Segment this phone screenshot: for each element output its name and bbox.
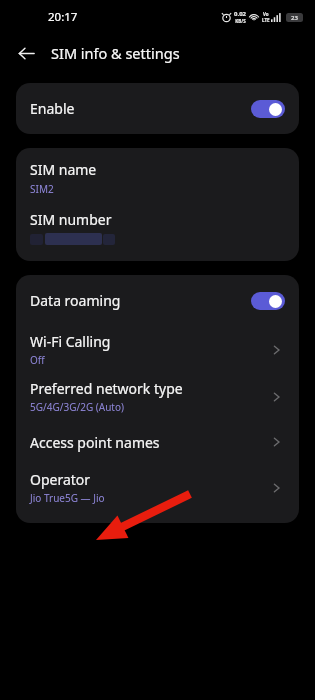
staticText: Jio True5G — Jio (30, 491, 105, 505)
staticText: Off (30, 353, 45, 367)
staticText: SIM number (30, 210, 112, 229)
button[interactable]: Toggle on (251, 100, 285, 118)
staticText: Access point names (30, 433, 160, 452)
staticText: Data roaming (30, 291, 121, 310)
button[interactable]: Access point names (16, 420, 299, 464)
staticText: Operator (30, 470, 91, 489)
staticText: 23 (291, 14, 298, 22)
staticText: 20:17 (48, 9, 78, 25)
staticText: SIM2 (30, 182, 54, 196)
button[interactable]: Wi-Fi Calling (16, 326, 299, 373)
staticText: 5G/4G/3G/2G (Auto) (30, 400, 124, 414)
button[interactable]: Enable (16, 83, 299, 134)
staticText: Wi-Fi Calling (30, 332, 111, 351)
staticText: Vo (263, 11, 269, 17)
staticText: Preferred network type (30, 379, 183, 398)
staticText: KB/S (235, 18, 246, 24)
staticText: SIM name (30, 160, 97, 179)
staticText: Enable (30, 99, 75, 118)
button[interactable]: Toggle on (251, 292, 285, 310)
staticText: LTE (262, 17, 270, 23)
staticText: 0.02 (234, 10, 246, 18)
button[interactable]: SIM name (16, 160, 299, 196)
button[interactable]: SIM number (16, 210, 299, 245)
button[interactable]: Preferred network type (16, 373, 299, 420)
button[interactable]: Operator (16, 464, 299, 511)
staticText: SIM info & settings (51, 43, 180, 63)
button[interactable]: Back (10, 37, 42, 69)
button[interactable]: Data roaming (16, 275, 299, 326)
